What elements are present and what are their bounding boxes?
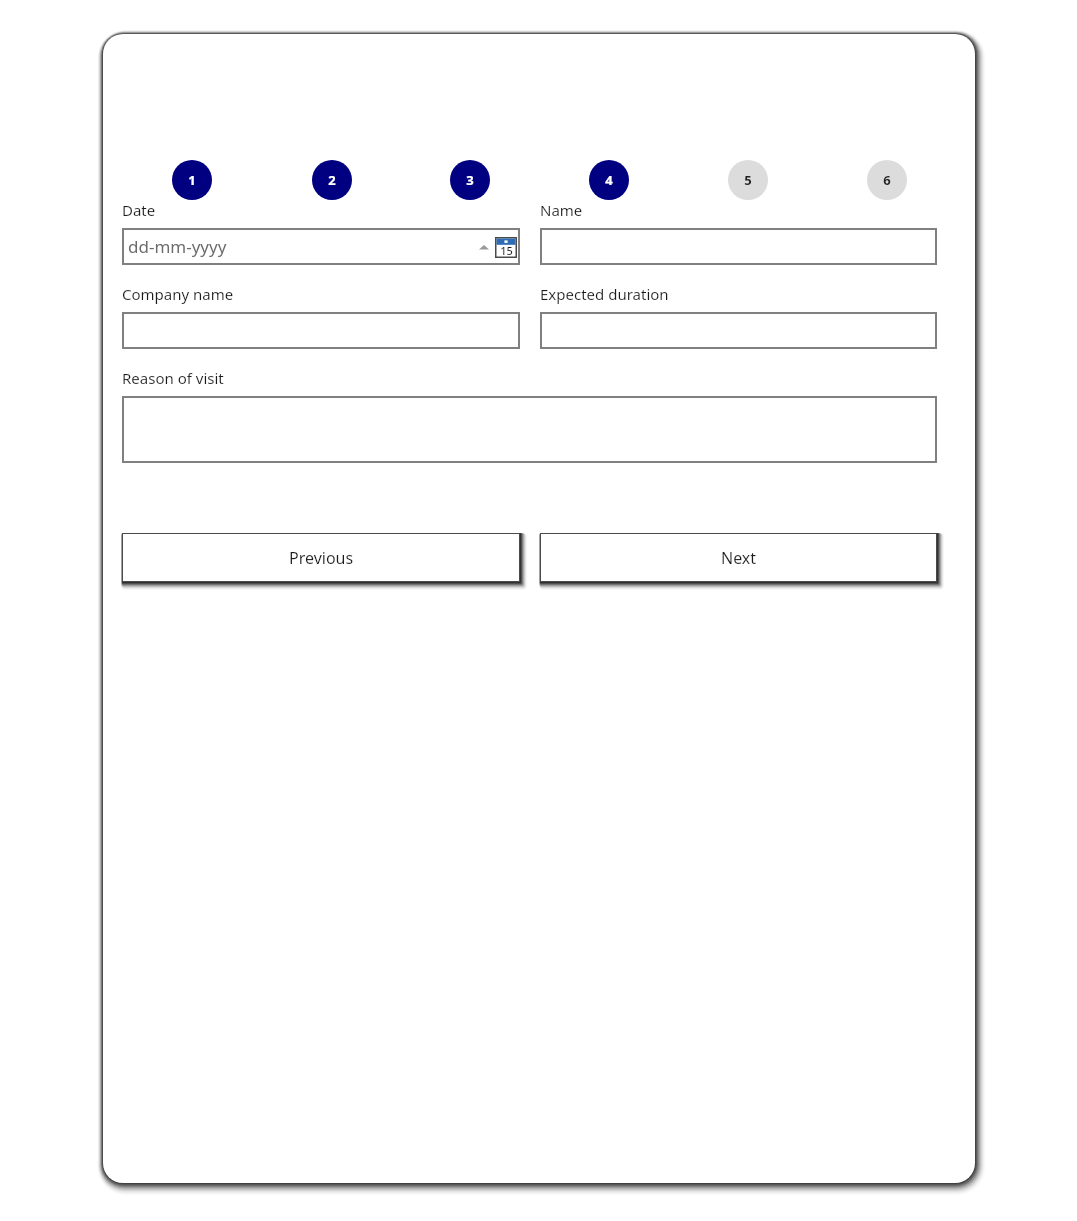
staticText: Date bbox=[122, 200, 156, 220]
staticText: Name bbox=[540, 200, 583, 220]
staticText: 1 bbox=[188, 171, 196, 189]
button[interactable] bbox=[540, 228, 937, 265]
staticText: 15 bbox=[500, 243, 513, 258]
button[interactable]: 6 bbox=[867, 160, 907, 200]
button[interactable]: Next bbox=[540, 533, 937, 582]
button[interactable]: 3 bbox=[450, 160, 490, 200]
button[interactable]: 5 bbox=[728, 160, 768, 200]
staticText: Previous bbox=[289, 547, 354, 569]
button[interactable]: 2 bbox=[312, 160, 352, 200]
staticText: 5 bbox=[744, 171, 752, 189]
staticText: Next bbox=[721, 547, 757, 569]
staticText: Reason of visit bbox=[122, 368, 224, 388]
staticText: 4 bbox=[605, 171, 613, 189]
button[interactable] bbox=[122, 396, 937, 463]
button[interactable]: Previous bbox=[122, 533, 520, 582]
button[interactable]: Open date picker bbox=[493, 235, 519, 259]
staticText: 3 bbox=[466, 171, 474, 189]
button[interactable]: 4 bbox=[589, 160, 629, 200]
button[interactable] bbox=[540, 312, 937, 349]
button[interactable] bbox=[122, 312, 520, 349]
staticText: Company name bbox=[122, 284, 234, 304]
staticText: 2 bbox=[328, 171, 336, 189]
staticText: 6 bbox=[883, 171, 891, 189]
button[interactable]: dd-mm-yyyy bbox=[122, 228, 520, 265]
staticText: dd-mm-yyyy bbox=[128, 235, 227, 258]
staticText: Expected duration bbox=[540, 284, 669, 304]
button[interactable]: 1 bbox=[172, 160, 212, 200]
